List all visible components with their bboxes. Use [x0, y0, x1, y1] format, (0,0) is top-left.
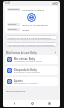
staticText: 9:41	[5, 1, 11, 5]
button[interactable]: Más formas de usar Bixby	[6, 50, 57, 54]
staticText: Encuentra lo que necesitas	[14, 71, 41, 74]
staticText: Medio	[22, 28, 56, 31]
button[interactable]: Atrás	[8, 100, 20, 107]
staticText: Ajustes	[14, 79, 23, 82]
button[interactable]: Respuesta	[5, 6, 58, 33]
button[interactable]: Bixby	[27, 13, 36, 22]
staticText: Respuesta	[8, 8, 20, 11]
button[interactable]: Ajustes	[5, 77, 58, 86]
button[interactable]: Respuesta	[7, 8, 56, 11]
button[interactable]: Recientes	[43, 100, 55, 107]
staticText: Puedes decir	[8, 23, 20, 26]
button[interactable]: Mis rutinas: Bixby	[5, 55, 58, 64]
staticText: "¿En qué día de la semana cae diciembre?…	[7, 43, 55, 46]
staticText: Tamaño	[8, 28, 17, 31]
button[interactable]: Más información	[6, 88, 57, 92]
staticText: "Cambia la cámara a modo profesional"	[7, 36, 52, 39]
staticText: Comandos rápidos	[22, 8, 56, 11]
button[interactable]: Inicio	[26, 100, 38, 107]
button[interactable]: "Cambia la cámara a modo profesional"	[5, 35, 58, 40]
staticText: Más formas de usar Bixby	[6, 51, 54, 54]
button[interactable]: Tamaño	[7, 28, 56, 31]
other: Expandir	[54, 51, 57, 54]
staticText: Mis rutinas: Bixby	[14, 57, 36, 60]
staticText: Personaliza tu asistente	[14, 82, 38, 85]
button[interactable]: "¿En qué día de la semana cae diciembre?…	[5, 42, 58, 47]
staticText: Iniciar la conversación	[22, 23, 56, 26]
button[interactable]: Puedes decir	[7, 23, 56, 26]
staticText: Más información	[6, 89, 26, 92]
staticText: Automatiza las tareas diarias	[14, 60, 43, 63]
button[interactable]: Búsqueda de Bixby	[5, 66, 58, 75]
staticText: Búsqueda de Bixby	[14, 68, 37, 71]
